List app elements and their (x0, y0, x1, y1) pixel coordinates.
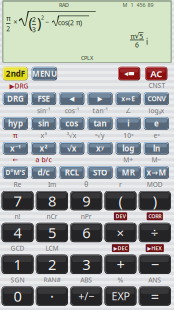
button[interactable]: 1 (1, 255, 34, 274)
staticText: FSE (38, 93, 50, 104)
button[interactable]: xʸ (87, 142, 113, 155)
staticText: RAN# (43, 275, 60, 284)
staticText: 6 (135, 41, 139, 49)
button[interactable]: = (139, 286, 171, 306)
button[interactable]: · (36, 286, 68, 306)
staticText: DRG (7, 93, 24, 104)
button[interactable]: 0 (1, 286, 34, 306)
button[interactable]: x⇔E (116, 92, 141, 105)
staticText: √x (67, 143, 77, 154)
staticText: ◀ (124, 71, 128, 77)
button[interactable]: MR (116, 166, 141, 179)
button[interactable]: × (104, 223, 137, 242)
button[interactable]: 9 (70, 191, 102, 210)
button[interactable]: STO (87, 166, 113, 179)
staticText: × (116, 224, 124, 241)
staticText: 6 (82, 223, 90, 242)
button[interactable]: ◀ (59, 92, 84, 105)
staticText: r (119, 180, 122, 189)
button[interactable]: e (144, 117, 169, 130)
staticText: sin (38, 118, 49, 129)
button[interactable]: log (116, 142, 141, 155)
staticText: x→M (146, 167, 166, 178)
staticText: Im (48, 180, 56, 189)
button[interactable]: sin (31, 117, 56, 130)
staticText: sin⁻¹ (37, 106, 50, 115)
button[interactable]: RCL (59, 166, 84, 179)
button[interactable]: i (116, 117, 141, 130)
button[interactable]: + (104, 255, 137, 274)
button[interactable]: FSE (31, 92, 56, 105)
staticText: DEV (115, 213, 125, 220)
staticText: CPLX (81, 54, 93, 62)
staticText: M+ (123, 155, 133, 164)
staticText: ( (28, 12, 32, 32)
button[interactable]: ) (139, 191, 171, 210)
staticText: ) (37, 12, 41, 32)
staticText: 8 (48, 191, 56, 210)
button[interactable]: x⁻¹ (3, 142, 28, 155)
staticText: √ (135, 31, 140, 40)
staticText: nCr (46, 212, 57, 221)
button[interactable]: D°M'S (3, 166, 28, 179)
button[interactable]: 7 (1, 191, 34, 210)
staticText: logₐx (148, 106, 164, 115)
button[interactable]: hyp (3, 117, 28, 130)
staticText: ← (12, 156, 18, 163)
button[interactable]: 2ndF (3, 67, 28, 80)
staticText: MOD (147, 180, 163, 189)
button[interactable]: ▶ (87, 92, 113, 105)
staticText: GCD (11, 244, 25, 253)
button[interactable]: 8 (36, 191, 68, 210)
staticText: LCM (45, 244, 58, 253)
staticText: 3 (32, 25, 36, 34)
button[interactable]: MENU (32, 67, 57, 80)
staticText: RCL (65, 167, 79, 178)
button[interactable]: ln (144, 142, 169, 155)
staticText: ◀ (69, 95, 74, 102)
staticText: tan (93, 118, 106, 129)
button[interactable]: +/− (70, 286, 102, 306)
button[interactable]: 4 (1, 223, 34, 242)
staticText: 0 (14, 286, 22, 306)
staticText: i (146, 36, 148, 47)
staticText: − (151, 255, 159, 274)
button[interactable]: Backspace (118, 67, 140, 80)
staticText: M− (151, 155, 161, 164)
staticText: ABS (80, 275, 92, 284)
button[interactable]: 6 (70, 223, 102, 242)
button[interactable]: CONV (144, 92, 169, 105)
button[interactable]: EXP (104, 286, 137, 306)
staticText: cos (65, 118, 78, 129)
button[interactable]: cos (59, 117, 84, 130)
button[interactable]: x→M (144, 166, 169, 179)
button[interactable]: ( (104, 191, 137, 210)
button[interactable]: x² (31, 142, 56, 155)
staticText: 2 (32, 15, 36, 24)
staticText: +/− (78, 289, 94, 303)
button[interactable]: 2 (36, 255, 68, 274)
staticText: x⁻¹ (10, 143, 21, 154)
staticText: CNST (148, 81, 165, 90)
staticText: CORR (148, 213, 161, 220)
button[interactable]: − (139, 255, 171, 274)
staticText: 2 (6, 24, 10, 33)
staticText: 9 (82, 191, 90, 210)
button[interactable]: ÷ (139, 223, 171, 242)
staticText: 5 (48, 223, 56, 242)
button[interactable]: tan (87, 117, 113, 130)
button[interactable]: √x (59, 142, 84, 155)
button[interactable]: DRG (3, 92, 28, 105)
staticText: % (117, 275, 123, 284)
staticText: ÷ (151, 224, 159, 241)
button[interactable]: 5 (36, 223, 68, 242)
staticText: d/c (38, 167, 50, 178)
staticText: 2ndF (6, 68, 25, 79)
staticText: 3 (82, 255, 90, 274)
button[interactable]: 3 (70, 255, 102, 274)
staticText: CONV (147, 94, 165, 103)
staticText: x⇔E (121, 94, 135, 103)
button[interactable]: d/c (31, 166, 56, 179)
staticText: ³√x (67, 131, 77, 140)
button[interactable]: AC (145, 67, 167, 80)
